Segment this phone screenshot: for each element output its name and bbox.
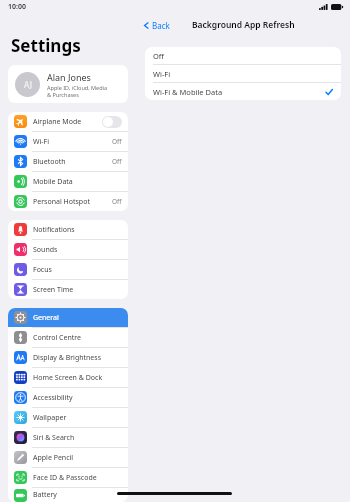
- button[interactable]: Notifications: [8, 220, 128, 239]
- staticText: Notifications: [33, 225, 122, 235]
- staticText: Background App Refresh: [192, 19, 295, 31]
- staticText: Back: [152, 20, 170, 31]
- button[interactable]: General: [8, 308, 128, 327]
- staticText: Personal Hotspot: [33, 197, 112, 207]
- button[interactable]: Bluetooth: [8, 152, 128, 171]
- button[interactable]: Personal Hotspot: [8, 192, 128, 211]
- staticText: General: [33, 313, 122, 323]
- staticText: Alan Jones: [47, 71, 91, 83]
- button[interactable]: Off: [145, 47, 341, 64]
- staticText: Battery: [33, 490, 122, 500]
- button[interactable]: Wi-Fi: [145, 65, 341, 82]
- staticText: Wi-Fi: [153, 69, 333, 79]
- button[interactable]: Focus: [8, 260, 128, 279]
- button[interactable]: Screen Time: [8, 280, 128, 299]
- button[interactable]: Back: [143, 20, 170, 31]
- staticText: Display & Brightness: [33, 353, 122, 363]
- staticText: Siri & Search: [33, 433, 122, 443]
- button[interactable]: Mobile Data: [8, 172, 128, 191]
- button[interactable]: Face ID & Passcode: [8, 468, 128, 487]
- staticText: AJ: [24, 79, 32, 90]
- staticText: Home Screen & Dock: [33, 373, 122, 383]
- staticText: Wi-Fi: [33, 137, 112, 147]
- staticText: Apple Pencil: [33, 453, 122, 463]
- staticText: Off: [153, 51, 333, 61]
- button[interactable]: Airplane Mode: [8, 112, 128, 131]
- button[interactable]: Wallpaper: [8, 408, 128, 427]
- staticText: Control Centre: [33, 333, 122, 343]
- staticText: Wi-Fi & Mobile Data: [153, 87, 325, 97]
- staticText: Settings: [11, 34, 81, 57]
- staticText: Off: [112, 157, 122, 166]
- staticText: Focus: [33, 265, 122, 275]
- staticText: Face ID & Passcode: [33, 473, 122, 483]
- staticText: 10:00: [8, 2, 26, 12]
- button[interactable]: Display & Brightness: [8, 348, 128, 367]
- staticText: Sounds: [33, 245, 122, 255]
- button[interactable]: Accessibility: [8, 388, 128, 407]
- button[interactable]: Sounds: [8, 240, 128, 259]
- staticText: & Purchases: [47, 91, 79, 98]
- staticText: Accessibility: [33, 393, 122, 403]
- staticText: Mobile Data: [33, 177, 122, 187]
- button[interactable]: Wi-Fi: [8, 132, 128, 151]
- staticText: Apple ID, iCloud, Media: [47, 84, 108, 91]
- staticText: Off: [112, 197, 122, 206]
- staticText: Airplane Mode: [33, 117, 102, 127]
- button[interactable]: Apple Pencil: [8, 448, 128, 467]
- staticText: Off: [112, 137, 122, 146]
- other: Selected: [325, 88, 333, 96]
- button[interactable]: Home Screen & Dock: [8, 368, 128, 387]
- button[interactable]: AJ: [8, 65, 128, 103]
- button[interactable]: Siri & Search: [8, 428, 128, 447]
- staticText: Screen Time: [33, 285, 122, 295]
- button[interactable]: Wi-Fi & Mobile Data: [145, 83, 341, 100]
- staticText: Bluetooth: [33, 157, 112, 167]
- button[interactable]: Battery: [8, 488, 128, 502]
- button[interactable]: Control Centre: [8, 328, 128, 347]
- staticText: Wallpaper: [33, 413, 122, 423]
